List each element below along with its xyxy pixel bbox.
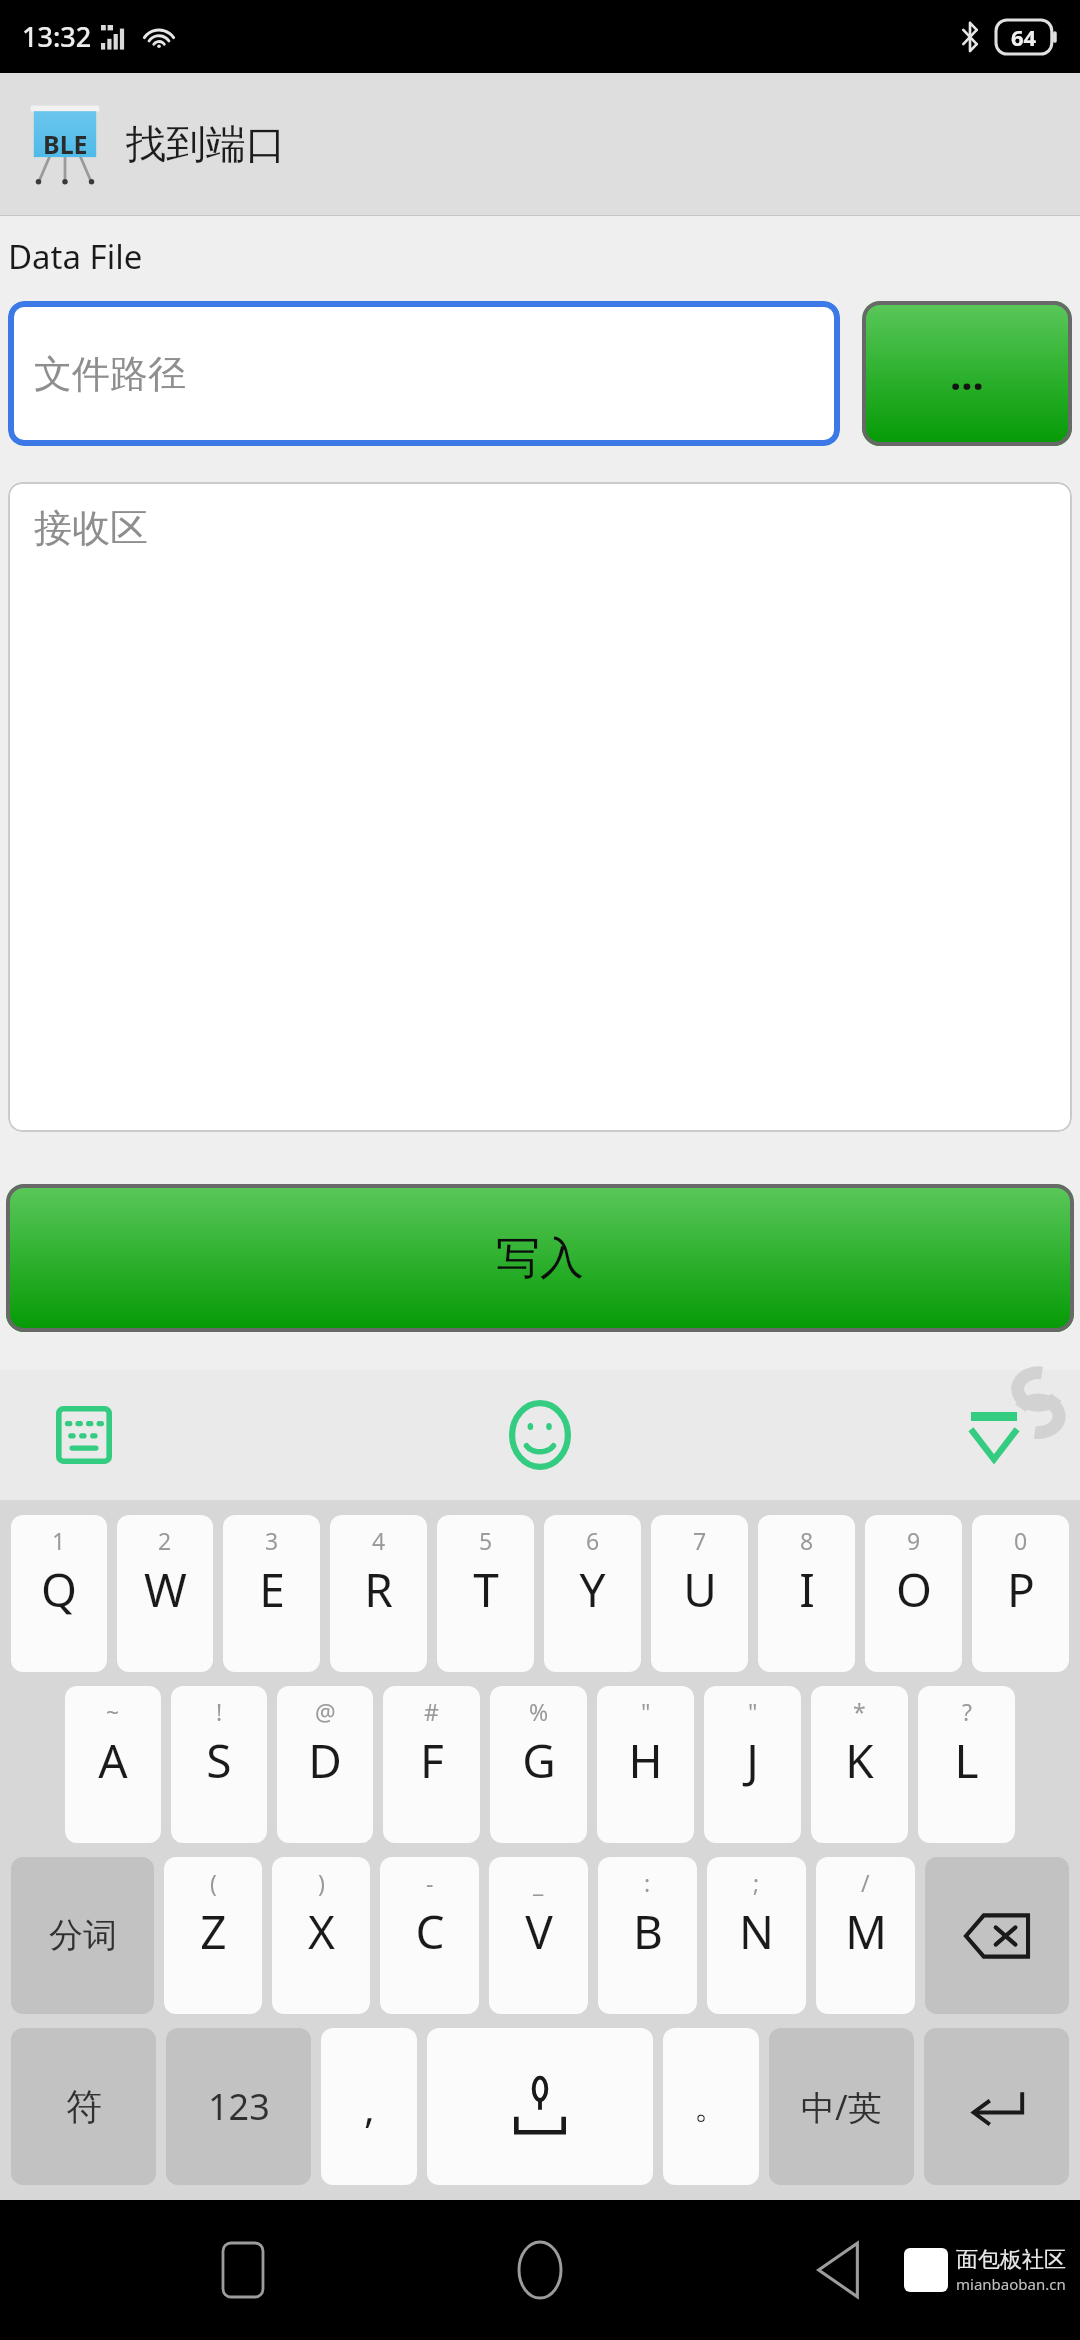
button[interactable]: Back [783, 2215, 893, 2325]
button[interactable]: R [330, 1515, 427, 1672]
button[interactable]: M [816, 1857, 915, 2014]
staticText: / [861, 1867, 870, 1898]
staticText: 9 [907, 1525, 921, 1556]
staticText: * [853, 1696, 866, 1727]
staticText: 写入 [496, 1231, 584, 1286]
staticText: " [748, 1696, 758, 1727]
staticText: M [845, 1900, 887, 1963]
button[interactable]: enter [924, 2028, 1069, 2185]
button[interactable]: Emoji [497, 1392, 583, 1478]
staticText: 8 [800, 1525, 814, 1556]
staticText: D [308, 1729, 342, 1792]
staticText: G [522, 1729, 556, 1792]
button[interactable]: 写入 [6, 1184, 1074, 1332]
button[interactable]: X [272, 1857, 370, 2014]
staticText: ; [753, 1867, 760, 1898]
button[interactable]: Keyboard layout [46, 1397, 122, 1473]
button[interactable]: 符 [11, 2028, 156, 2185]
button[interactable]: Y [544, 1515, 641, 1672]
button[interactable]: H [597, 1686, 694, 1843]
staticText: R [364, 1558, 393, 1621]
button[interactable]: 中/英 [769, 2028, 914, 2185]
button[interactable]: Home [485, 2215, 595, 2325]
staticText: C [415, 1900, 445, 1963]
staticText: S [206, 1729, 232, 1792]
staticText: , [364, 2080, 375, 2134]
button[interactable]: Z [164, 1857, 262, 2014]
staticText: 13:32 [22, 18, 92, 55]
button[interactable]: U [651, 1515, 748, 1672]
button[interactable]: O [865, 1515, 962, 1672]
staticText: 1 [52, 1525, 66, 1556]
staticText: " [641, 1696, 651, 1727]
staticText: 64 [1011, 22, 1037, 52]
staticText: P [1007, 1558, 1035, 1621]
staticText: 找到端口 [126, 119, 286, 169]
staticText: 。 [694, 2085, 728, 2128]
staticText: _ [533, 1867, 544, 1898]
button[interactable]: 分词 [11, 1857, 154, 2014]
staticText: 123 [208, 2082, 270, 2131]
button[interactable]: E [223, 1515, 320, 1672]
staticText: W [144, 1558, 187, 1621]
staticText: A [98, 1729, 128, 1792]
button[interactable]: W [117, 1515, 213, 1672]
button[interactable]: Browse file [862, 301, 1072, 446]
staticText: K [845, 1729, 874, 1792]
button[interactable]: P [972, 1515, 1069, 1672]
button[interactable]: S [171, 1686, 267, 1843]
staticText: Y [579, 1558, 606, 1621]
button[interactable]: backspace [925, 1857, 1069, 2014]
button[interactable]: V [489, 1857, 588, 2014]
staticText: mianbaoban.cn [956, 2274, 1066, 2294]
staticText: : [644, 1867, 651, 1898]
button[interactable]: Q [11, 1515, 107, 1672]
staticText: E [259, 1558, 285, 1621]
button[interactable]: L [918, 1686, 1015, 1843]
staticText: 4 [372, 1525, 386, 1556]
button[interactable]: 123 [166, 2028, 311, 2185]
button[interactable]: T [437, 1515, 534, 1672]
staticText: 7 [693, 1525, 707, 1556]
staticText: 面包板社区 [956, 2246, 1066, 2274]
staticText: BLE [43, 127, 88, 161]
button[interactable]: 接收区 [8, 482, 1072, 1132]
button[interactable]: Recents [188, 2215, 298, 2325]
button[interactable]: C [380, 1857, 479, 2014]
button[interactable]: B [598, 1857, 697, 2014]
staticText: V [525, 1900, 553, 1963]
staticText: H [628, 1729, 663, 1792]
staticText: @ [315, 1696, 336, 1727]
button[interactable]: 。 [663, 2028, 759, 2185]
button[interactable]: 文件路径 [8, 301, 840, 446]
staticText: L [954, 1729, 979, 1792]
staticText: ) [318, 1867, 325, 1898]
staticText: 6 [586, 1525, 600, 1556]
staticText: 5 [479, 1525, 493, 1556]
button[interactable]: F [383, 1686, 480, 1843]
button[interactable]: I [758, 1515, 855, 1672]
staticText: 符 [66, 2084, 102, 2129]
staticText: T [473, 1558, 499, 1621]
button[interactable]: , [321, 2028, 417, 2185]
button[interactable]: J [704, 1686, 801, 1843]
button[interactable]: K [811, 1686, 908, 1843]
staticText: Z [200, 1900, 227, 1963]
staticText: U [683, 1558, 717, 1621]
button[interactable]: G [490, 1686, 587, 1843]
staticText: 中/英 [801, 2084, 882, 2130]
staticText: ~ [106, 1696, 120, 1727]
staticText: ! [216, 1696, 223, 1727]
button[interactable]: N [707, 1857, 806, 2014]
button[interactable]: A [65, 1686, 161, 1843]
button[interactable]: D [277, 1686, 373, 1843]
staticText: % [529, 1696, 549, 1727]
staticText: ? [962, 1696, 972, 1727]
staticText: F [420, 1729, 444, 1792]
staticText: Data File [8, 234, 143, 279]
staticText: Q [41, 1558, 77, 1621]
staticText: # [424, 1696, 439, 1727]
button[interactable]: Hide keyboard [954, 1395, 1034, 1475]
staticText: 3 [265, 1525, 279, 1556]
button[interactable]: space [427, 2028, 653, 2185]
